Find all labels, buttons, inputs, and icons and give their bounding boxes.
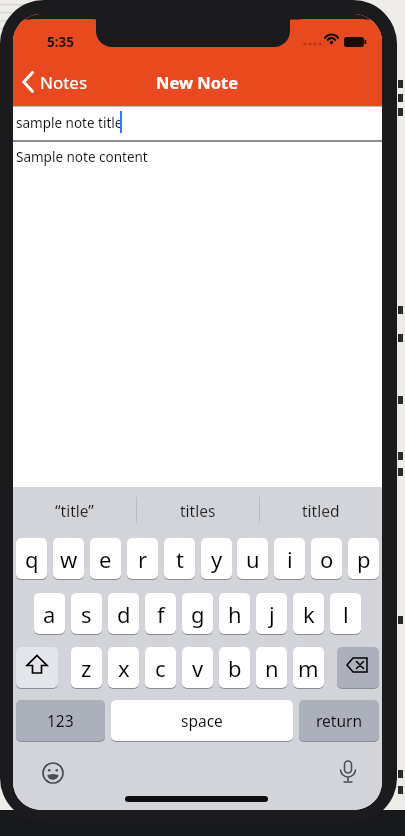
button[interactable] (42, 762, 64, 784)
button[interactable]: y (201, 538, 232, 579)
staticText: j (269, 599, 275, 629)
button[interactable]: x (108, 647, 139, 688)
button[interactable]: b (219, 647, 250, 688)
staticText: space (181, 710, 223, 731)
staticText: b (228, 653, 242, 683)
button[interactable]: 123 (16, 700, 105, 741)
button[interactable] (136, 487, 259, 533)
button[interactable]: j (256, 593, 287, 634)
staticText: i (287, 544, 293, 574)
button[interactable]: g (182, 593, 213, 634)
button[interactable]: p (348, 538, 379, 579)
button[interactable]: c (145, 647, 176, 688)
staticText: v (192, 653, 204, 683)
staticText: “title” (55, 500, 94, 521)
button[interactable]: m (293, 647, 324, 688)
staticText: d (117, 599, 131, 629)
button[interactable]: o (311, 538, 342, 579)
button[interactable]: f (145, 593, 176, 634)
button[interactable]: space (111, 700, 293, 741)
staticText: o (320, 544, 334, 574)
staticText: q (25, 544, 39, 574)
staticText: r (138, 544, 148, 574)
button[interactable]: s (71, 593, 102, 634)
button[interactable]: t (164, 538, 195, 579)
staticText: titles (180, 500, 216, 521)
staticText: e (99, 544, 112, 574)
staticText: Sample note content (16, 148, 148, 166)
staticText: c (155, 653, 166, 683)
staticText: Notes (40, 71, 88, 94)
button[interactable] (16, 647, 58, 688)
staticText: t (176, 544, 184, 574)
button[interactable]: e (90, 538, 121, 579)
staticText: l (343, 599, 349, 629)
button[interactable]: k (293, 593, 324, 634)
staticText: p (357, 544, 371, 574)
staticText: sample note title (16, 114, 123, 132)
button[interactable]: u (237, 538, 268, 579)
staticText: k (303, 599, 315, 629)
button[interactable] (259, 487, 382, 533)
button[interactable]: w (53, 538, 84, 579)
staticText: n (265, 653, 279, 683)
staticText: m (298, 653, 319, 683)
button[interactable] (13, 487, 136, 533)
button[interactable]: i (274, 538, 305, 579)
button[interactable]: d (108, 593, 139, 634)
staticText: New Note (156, 71, 239, 93)
button[interactable]: a (34, 593, 65, 634)
staticText: f (157, 599, 165, 629)
button[interactable]: l (330, 593, 361, 634)
button[interactable]: n (256, 647, 287, 688)
staticText: return (316, 710, 362, 731)
staticText: 123 (47, 710, 74, 731)
staticText: titled (302, 500, 340, 521)
staticText: y (211, 544, 223, 574)
button[interactable] (13, 106, 382, 140)
staticText: w (60, 544, 78, 574)
staticText: g (191, 599, 205, 629)
staticText: h (228, 599, 242, 629)
button[interactable]: z (71, 647, 102, 688)
staticText: 5:35 (47, 33, 74, 49)
button[interactable] (338, 760, 358, 785)
button[interactable]: return (299, 700, 379, 741)
staticText: u (246, 544, 260, 574)
button[interactable] (337, 647, 379, 688)
staticText: x (118, 653, 130, 683)
button[interactable]: r (127, 538, 158, 579)
button[interactable] (19, 70, 99, 94)
button[interactable]: q (16, 538, 47, 579)
staticText: s (81, 599, 92, 629)
staticText: z (81, 653, 92, 683)
button[interactable]: v (182, 647, 213, 688)
button[interactable]: h (219, 593, 250, 634)
staticText: a (43, 599, 56, 629)
